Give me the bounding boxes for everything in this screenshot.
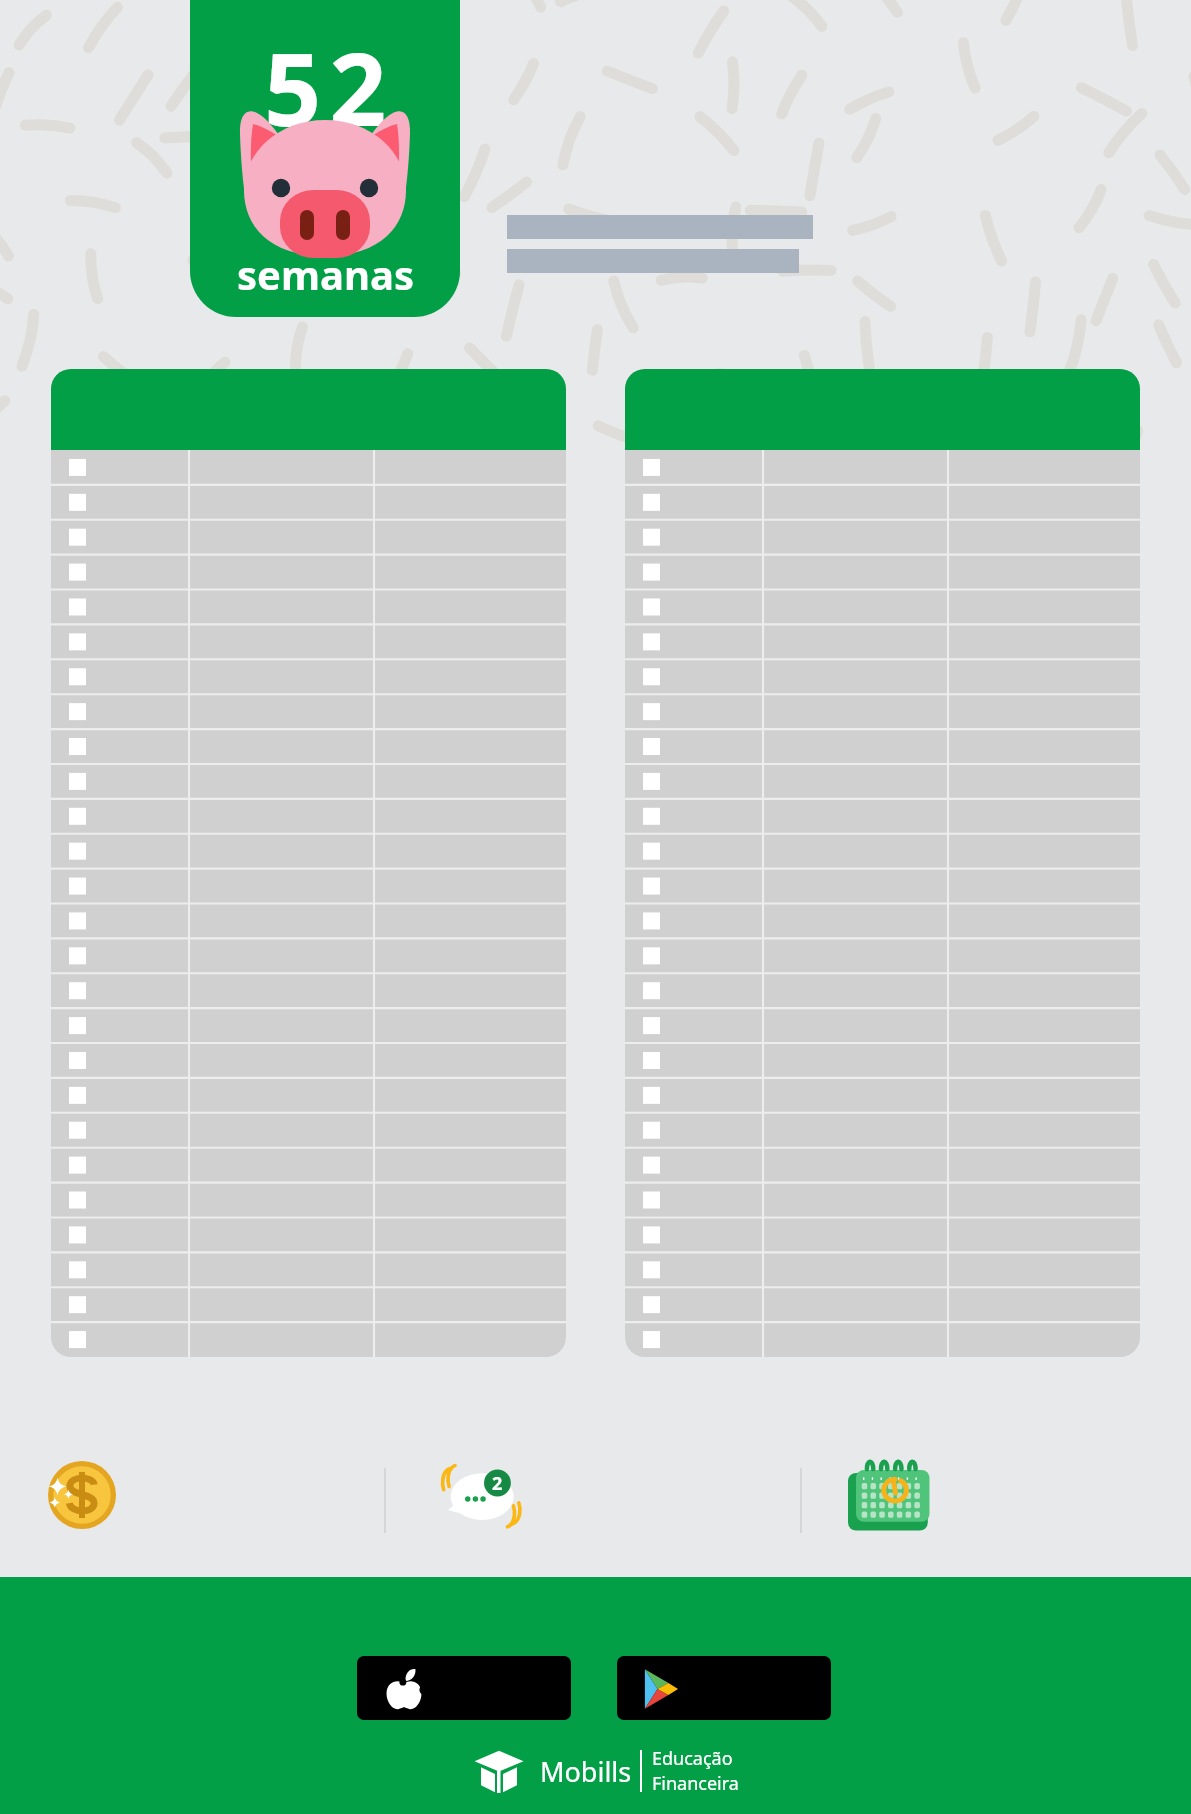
button[interactable]: Get it on Google Play: [617, 1656, 831, 1720]
staticText: 52: [264, 19, 395, 155]
staticText: semanas: [237, 247, 414, 301]
button[interactable]: Calendário: [848, 1461, 932, 1533]
button[interactable]: Download on the App Store: [357, 1656, 571, 1720]
button[interactable]: Mobills Educacao Financeira: [474, 1746, 739, 1796]
button[interactable]: Economize: [48, 1461, 116, 1529]
staticText: 2: [492, 1471, 503, 1496]
button[interactable]: Mensagens: [434, 1458, 524, 1536]
button[interactable]: 52 semanas: [190, 0, 460, 317]
button[interactable]: [51, 369, 566, 1357]
staticText: Financeira: [652, 1771, 739, 1796]
button[interactable]: [625, 369, 1140, 1357]
staticText: Educação: [652, 1746, 733, 1771]
staticText: Mobills: [540, 1753, 632, 1790]
